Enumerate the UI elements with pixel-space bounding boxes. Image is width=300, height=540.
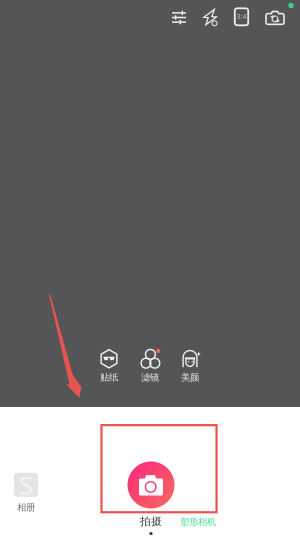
button[interactable]: Adjust — [164, 2, 194, 32]
button[interactable]: 滤镜 — [130, 349, 170, 383]
staticText: S — [19, 468, 33, 501]
button[interactable]: 塑形相机 — [176, 514, 220, 530]
button[interactable]: Switch camera — [260, 3, 290, 33]
button[interactable]: Shutter — [127, 461, 174, 508]
staticText: 贴纸 — [100, 372, 118, 383]
button[interactable]: 贴纸 — [89, 349, 129, 383]
staticText: 拍摄 — [140, 515, 162, 528]
staticText: 美颜 — [181, 372, 199, 383]
staticText: 塑形相机 — [180, 516, 216, 528]
staticText: 3:4 — [236, 12, 246, 21]
staticText: 滤镜 — [141, 372, 159, 383]
staticText: 相册 — [17, 502, 35, 513]
button[interactable]: 美颜 — [170, 349, 210, 383]
button[interactable]: Aspect ratio 3 by 4 — [226, 2, 256, 32]
button[interactable]: S — [14, 473, 38, 513]
button[interactable]: 拍摄 — [129, 513, 173, 537]
button[interactable]: Flash off — [195, 2, 225, 32]
